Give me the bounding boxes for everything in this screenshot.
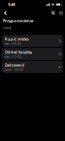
staticText: Kupić mleko bbox=[4, 36, 28, 41]
staticText: 9:48 bbox=[8, 2, 15, 7]
staticText: dziś · 11:30 bbox=[4, 55, 21, 59]
button[interactable]: Back bbox=[2, 9, 9, 16]
button[interactable]: Oddać książkę bbox=[2, 48, 63, 60]
button[interactable]: More bbox=[58, 10, 64, 16]
button[interactable]: Search bbox=[50, 10, 56, 16]
staticText: jutro · 18:00 bbox=[4, 68, 23, 72]
staticText: Oddać książkę bbox=[4, 49, 31, 54]
staticText: Przypomnienia bbox=[3, 18, 33, 23]
staticText: Dzisiaj bbox=[3, 26, 11, 30]
button[interactable]: Kupić mleko bbox=[2, 35, 63, 47]
staticText: dziś · 09:00 bbox=[4, 42, 21, 46]
button[interactable]: Zadzwonić bbox=[2, 61, 63, 73]
staticText: Zadzwonić bbox=[4, 62, 24, 67]
